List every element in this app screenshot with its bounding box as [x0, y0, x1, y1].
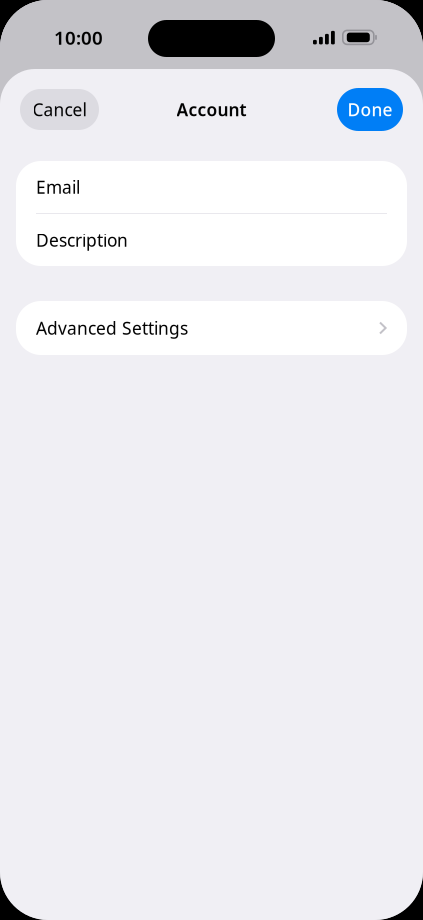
button[interactable]: Done — [337, 88, 403, 131]
staticText: Advanced Settings — [36, 316, 188, 339]
button[interactable]: Email — [16, 161, 407, 213]
staticText: 10:00 — [54, 25, 103, 50]
staticText: Description — [36, 228, 128, 251]
button[interactable]: Cancel — [20, 89, 99, 130]
button[interactable]: Advanced Settings — [16, 301, 407, 355]
staticText: Account — [176, 98, 246, 121]
staticText: Email — [36, 175, 80, 198]
button[interactable]: Description — [16, 214, 407, 266]
staticText: Done — [347, 98, 392, 121]
staticText: Cancel — [32, 98, 86, 121]
